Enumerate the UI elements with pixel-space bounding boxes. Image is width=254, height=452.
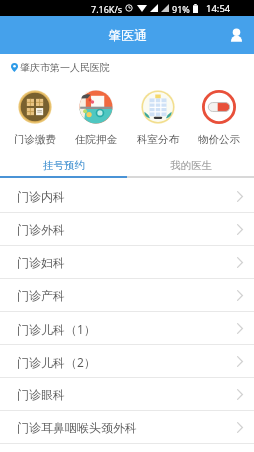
staticText: 住院押金 (75, 133, 117, 146)
button[interactable]: 个人中心 (224, 23, 248, 47)
button[interactable]: 门诊外科 (0, 213, 254, 246)
staticText: 门诊缴费 (14, 133, 56, 146)
button[interactable]: 我的医生 (127, 155, 254, 176)
staticText: 门诊产科 (17, 288, 65, 303)
staticText: 91% (172, 3, 190, 15)
button[interactable]: 门诊儿科（1） (0, 312, 254, 345)
staticText: 我的医生 (170, 159, 212, 172)
button[interactable]: 门诊内科 (0, 180, 254, 213)
staticText: 门诊内科 (17, 189, 65, 204)
button[interactable]: 肇庆市第一人民医院 (0, 54, 254, 77)
staticText: 科室分布 (137, 133, 179, 146)
button[interactable]: 门诊妇科 (0, 246, 254, 279)
button[interactable]: 挂号预约 (0, 155, 127, 176)
button[interactable]: 门诊儿科（2） (0, 345, 254, 378)
staticText: 门诊眼科 (17, 387, 65, 402)
staticText: 挂号预约 (43, 159, 85, 172)
staticText: 门诊儿科（2） (17, 354, 96, 370)
staticText: 14:54 (206, 2, 231, 15)
staticText: 门诊妇科 (17, 255, 65, 270)
button[interactable]: 门诊产科 (0, 279, 254, 312)
staticText: 肇庆市第一人民医院 (20, 61, 110, 74)
button[interactable]: 门诊缴费 (9, 90, 61, 146)
staticText: 门诊儿科（1） (17, 321, 96, 337)
staticText: 7.16K/s (91, 3, 123, 15)
button[interactable]: 物价公示 (193, 90, 245, 146)
staticText: 肇医通 (108, 27, 147, 43)
staticText: 门诊外科 (17, 222, 65, 237)
button[interactable]: 科室分布 (132, 90, 184, 146)
button[interactable]: 住院押金 (70, 90, 122, 146)
button[interactable]: 门诊耳鼻咽喉头颈外科 (0, 411, 254, 444)
staticText: 门诊耳鼻咽喉头颈外科 (17, 420, 137, 435)
button[interactable]: 门诊眼科 (0, 378, 254, 411)
staticText: 物价公示 (198, 133, 240, 146)
